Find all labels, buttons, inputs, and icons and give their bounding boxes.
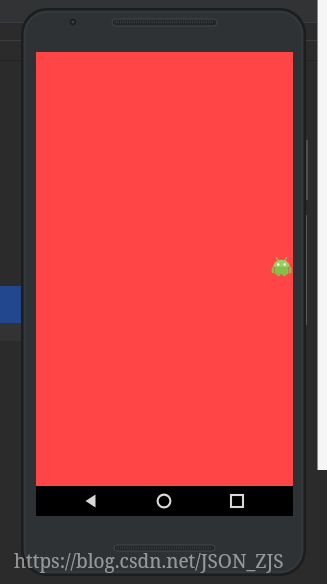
button[interactable]: Home <box>151 489 178 513</box>
button[interactable]: Back <box>78 489 105 513</box>
button[interactable]: Android robot <box>271 256 293 278</box>
button[interactable]: Recent apps <box>224 489 251 513</box>
